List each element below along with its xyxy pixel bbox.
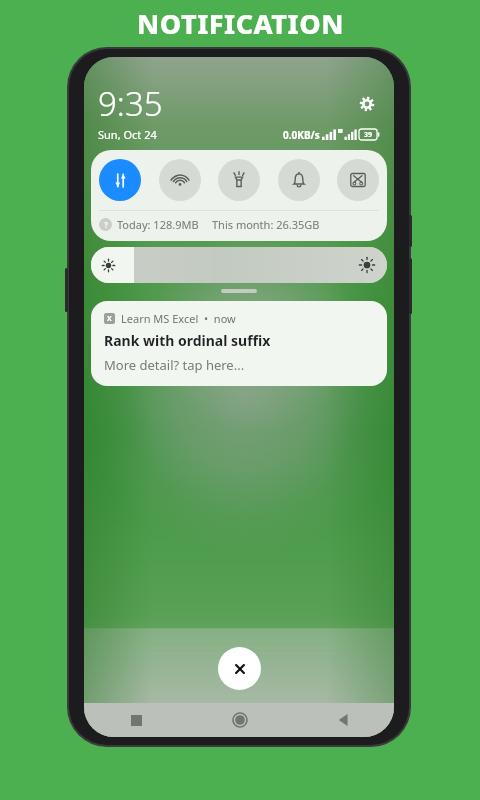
button[interactable]: Expand (221, 289, 257, 293)
staticText: More detail? tap here... (104, 356, 245, 374)
button[interactable]: Settings (354, 91, 380, 117)
button[interactable]: X (91, 301, 387, 386)
staticText: This month: 26.35GB (212, 217, 320, 232)
button[interactable]: Wi-Fi (159, 159, 201, 201)
staticText: ? (104, 219, 108, 230)
staticText: Sun, Oct 24 (98, 127, 157, 142)
staticText: 0.0KB/s (283, 128, 320, 142)
button[interactable]: Screenshot (337, 159, 379, 201)
button[interactable]: Back (291, 703, 394, 737)
staticText: X (107, 314, 112, 324)
button[interactable]: Mobile data (99, 159, 141, 201)
staticText: Rank with ordinal suffix (104, 331, 271, 350)
button[interactable]: Close notification shade (218, 647, 261, 690)
staticText: 9:35 (98, 81, 163, 126)
button[interactable]: ? (99, 217, 379, 232)
staticText: 39 (364, 130, 373, 140)
staticText: NOTIFICATION (137, 5, 344, 42)
button[interactable]: Brightness (91, 247, 387, 283)
button[interactable]: Do not disturb (278, 159, 320, 201)
button[interactable]: Flashlight (218, 159, 260, 201)
button[interactable]: Recents (84, 703, 188, 737)
button[interactable]: Home (188, 703, 291, 737)
staticText: Learn MS Excel • now (121, 311, 236, 326)
staticText: Today: 128.9MB (117, 217, 199, 232)
